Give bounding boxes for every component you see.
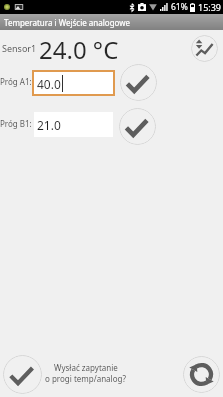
- staticText: 61%: [171, 1, 188, 13]
- staticText: Temperatura i Wejście analogowe: [4, 17, 131, 28]
- staticText: o progi temp/analog?: [45, 373, 126, 384]
- staticText: Wysłać zapytanie: [54, 362, 118, 373]
- button[interactable]: Show chart: [191, 35, 218, 62]
- button[interactable]: Wysłać zapytanie: [45, 362, 126, 384]
- staticText: 21.0: [37, 117, 61, 133]
- staticText: 15:39: [198, 1, 222, 13]
- staticText: Próg B1:: [0, 118, 32, 129]
- staticText: Sensor1: [2, 42, 37, 54]
- staticText: 40.0: [37, 76, 61, 92]
- staticText: 24.0 °C: [39, 33, 119, 66]
- button[interactable]: Send request: [3, 355, 42, 394]
- button[interactable]: 40.0: [32, 70, 115, 96]
- button[interactable]: Confirm threshold A1: [120, 64, 157, 101]
- button[interactable]: Refresh: [183, 356, 220, 393]
- button[interactable]: Confirm threshold B1: [119, 108, 156, 145]
- button[interactable]: 21.0: [34, 112, 113, 137]
- staticText: Próg A1:: [0, 76, 32, 87]
